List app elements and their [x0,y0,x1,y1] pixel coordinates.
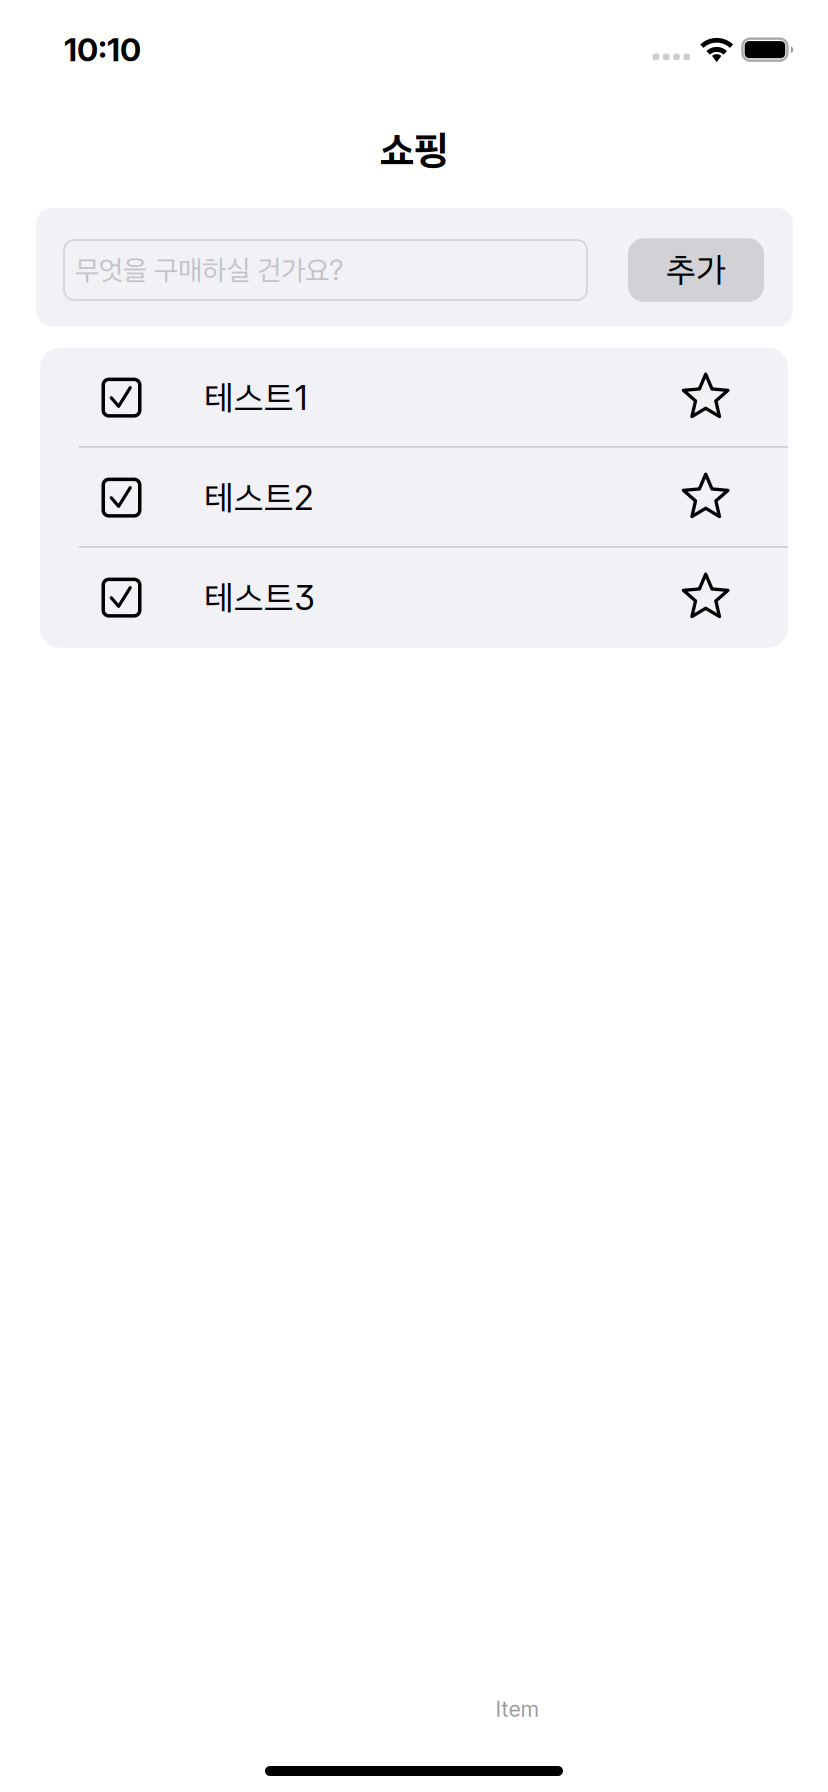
button[interactable]: Toggle 테스트3 [81,548,161,648]
button[interactable]: 테스트2 [40,448,788,548]
staticText: 추가 [666,249,726,291]
staticText: 테스트3 [204,577,315,618]
staticText: 쇼핑 [380,126,448,174]
button[interactable]: 추가 [628,238,764,302]
button[interactable]: Favorite 테스트2 [659,448,753,548]
staticText: 테스트1 [204,377,311,418]
button[interactable]: Item [414,1680,621,1738]
button[interactable]: Favorite 테스트3 [659,548,753,648]
staticText: 무엇을 구매하실 건가요? [75,253,343,287]
staticText: Item [495,1696,539,1722]
button[interactable]: Toggle 테스트2 [81,448,161,548]
staticText: 테스트2 [204,477,314,518]
button[interactable]: 테스트3 [40,548,788,648]
button[interactable]: Favorite 테스트1 [659,348,753,448]
staticText: 10:10 [64,30,141,69]
button[interactable]: 테스트1 [40,348,788,448]
button[interactable]: Toggle 테스트1 [81,348,161,448]
button[interactable]: 무엇을 구매하실 건가요? [64,240,587,300]
